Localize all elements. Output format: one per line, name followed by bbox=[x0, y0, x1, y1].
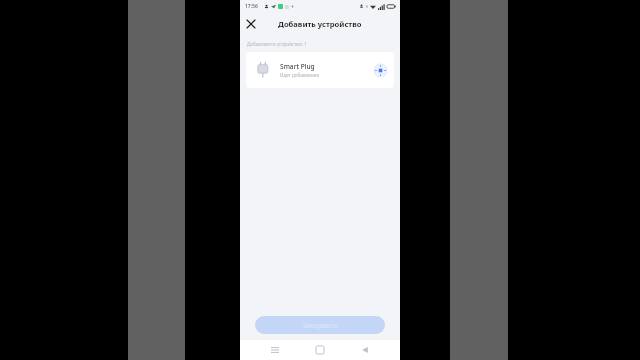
button[interactable]: Close bbox=[243, 16, 259, 32]
staticText: ‹ bbox=[366, 3, 368, 10]
button[interactable]: Back bbox=[355, 340, 375, 360]
other: Adding bbox=[374, 64, 387, 77]
staticText: Идет добавление bbox=[280, 72, 319, 78]
button[interactable]: Завершить bbox=[255, 316, 385, 334]
staticText: Добавить устройство bbox=[278, 19, 362, 29]
button[interactable]: Home bbox=[310, 340, 330, 360]
staticText: Добавляется устройство: 1 bbox=[247, 41, 307, 47]
staticText: Smart Plug bbox=[280, 62, 315, 71]
button[interactable]: Smart Plug bbox=[246, 52, 394, 88]
staticText: 17:56 bbox=[245, 3, 258, 10]
button[interactable]: Recents bbox=[265, 340, 285, 360]
staticText: Завершить bbox=[303, 321, 337, 329]
